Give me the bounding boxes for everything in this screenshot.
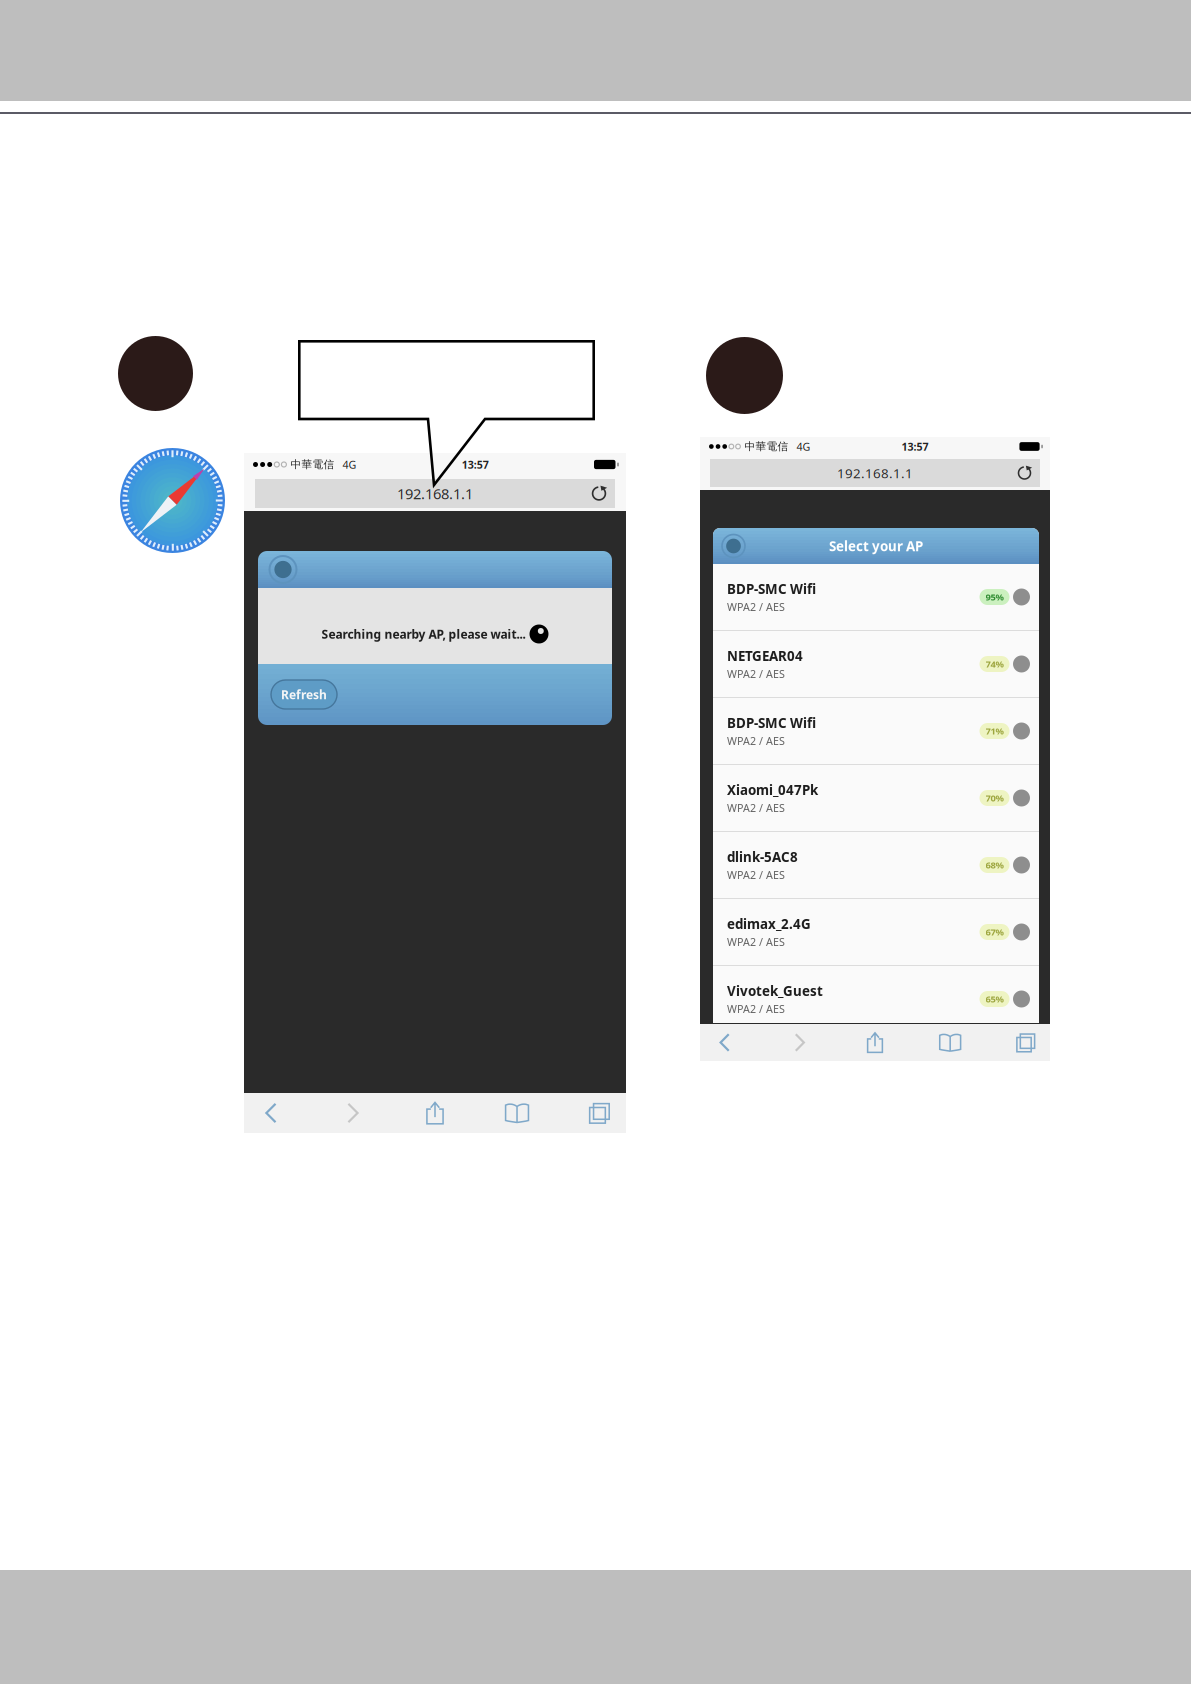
button[interactable]: Share — [420, 1093, 450, 1133]
staticText: 4G — [342, 457, 356, 472]
button[interactable]: Share — [861, 1024, 889, 1061]
staticText: 13:57 — [901, 439, 928, 454]
staticText: 中華電信 — [290, 458, 334, 471]
staticText: 65% — [985, 993, 1003, 1005]
button[interactable]: BDP-SMC Wifi — [713, 564, 1039, 630]
staticText: Xiaomi_047Pk — [727, 781, 818, 799]
button[interactable]: BDP-SMC Wifi — [713, 698, 1039, 764]
staticText: WPA2 / AES — [727, 600, 785, 614]
button[interactable]: Xiaomi_047Pk — [713, 765, 1039, 831]
staticText: BDP-SMC Wifi — [727, 580, 816, 598]
button[interactable]: Back — [256, 1093, 286, 1133]
staticText: WPA2 / AES — [727, 935, 785, 949]
button[interactable]: edimax_2.4G — [713, 899, 1039, 965]
staticText: 67% — [985, 926, 1003, 938]
staticText: WPA2 / AES — [727, 801, 785, 815]
button[interactable]: Tabs — [584, 1093, 614, 1133]
button[interactable]: Home — [265, 551, 301, 588]
staticText: 74% — [985, 658, 1003, 670]
staticText: WPA2 / AES — [727, 734, 785, 748]
staticText: BDP-SMC Wifi — [727, 714, 816, 732]
button[interactable]: Tabs — [1012, 1024, 1039, 1061]
button[interactable]: Forward — [338, 1093, 368, 1133]
button[interactable]: Forward — [786, 1024, 813, 1061]
staticText: WPA2 / AES — [727, 868, 785, 882]
staticText: 70% — [985, 792, 1003, 804]
button[interactable]: Home — [718, 528, 749, 564]
button[interactable]: Bookmarks — [936, 1024, 964, 1061]
staticText: WPA2 / AES — [727, 1002, 785, 1016]
staticText: 71% — [985, 725, 1003, 737]
staticText: dlink-5AC8 — [727, 848, 798, 866]
staticText: NETGEAR04 — [727, 647, 803, 665]
staticText: edimax_2.4G — [727, 915, 811, 933]
staticText: Vivotek_Guest — [727, 982, 823, 1000]
staticText: 192.168.1.1 — [837, 464, 913, 482]
staticText: 68% — [985, 859, 1003, 871]
staticText: WPA2 / AES — [727, 667, 785, 681]
staticText: Searching nearby AP, please wait... — [321, 626, 525, 642]
button[interactable]: Vivotek_Guest — [713, 966, 1039, 1032]
button[interactable]: NETGEAR04 — [713, 631, 1039, 697]
staticText: 192.168.1.1 — [397, 484, 473, 503]
button[interactable]: Refresh — [269, 678, 339, 711]
staticText: 中華電信 — [744, 440, 788, 453]
button[interactable]: Bookmarks — [502, 1093, 532, 1133]
staticText: Refresh — [281, 686, 327, 702]
staticText: 95% — [985, 591, 1003, 603]
button[interactable]: dlink-5AC8 — [713, 832, 1039, 898]
staticText: Select your AP — [829, 537, 923, 555]
button[interactable]: Back — [711, 1024, 738, 1061]
staticText: 13:57 — [462, 457, 489, 472]
staticText: 4G — [796, 439, 810, 454]
